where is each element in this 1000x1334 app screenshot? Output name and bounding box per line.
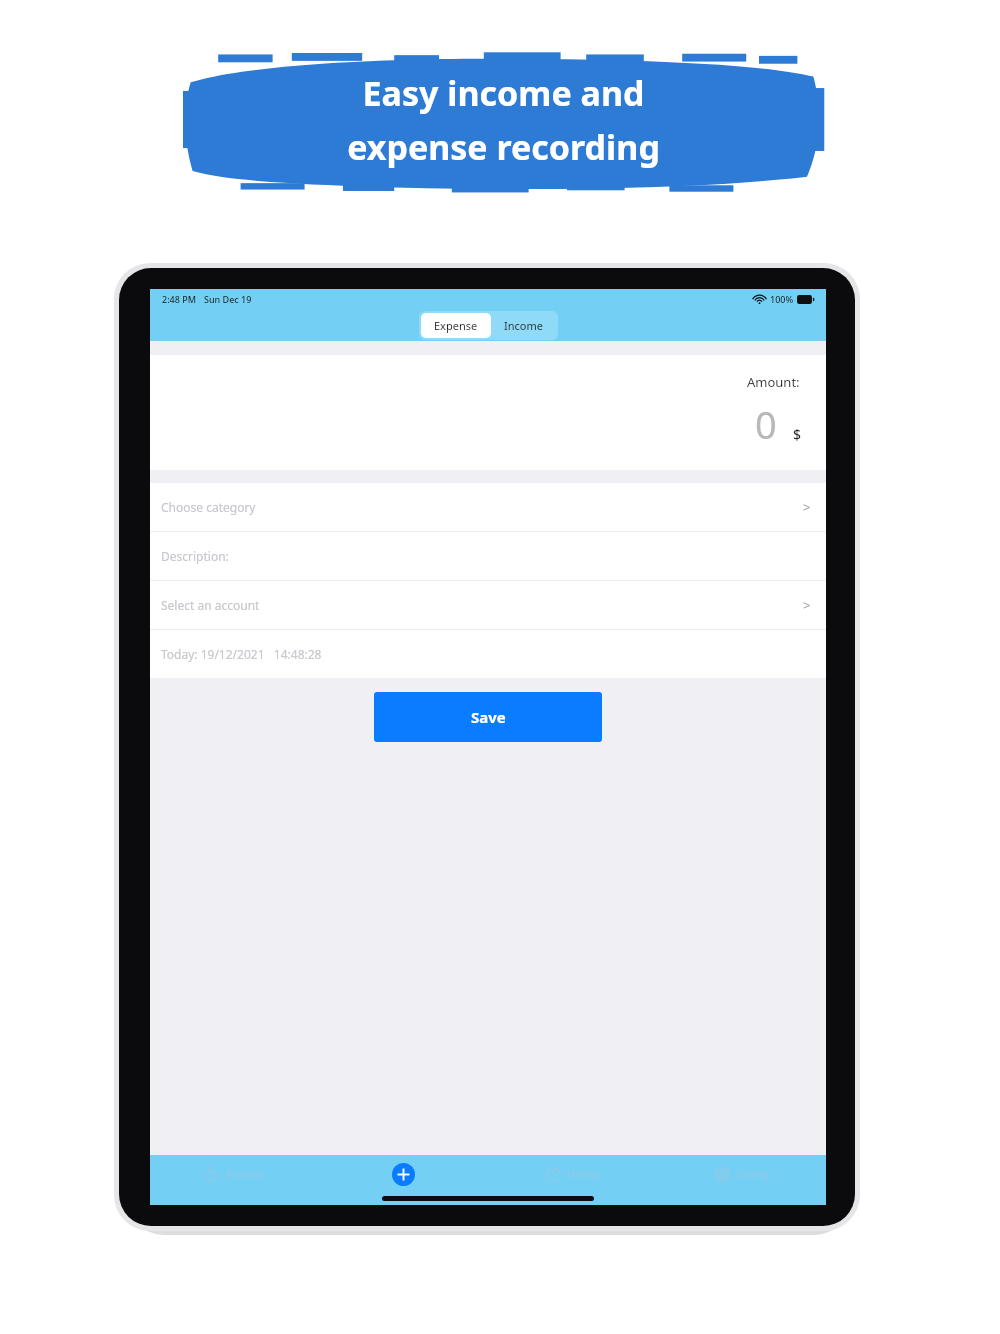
button[interactable]: Description:: [150, 532, 826, 580]
staticText: 0: [755, 398, 777, 450]
staticText: >: [803, 498, 811, 516]
button[interactable]: Add transaction: [319, 1155, 488, 1193]
staticText: >: [803, 596, 811, 614]
staticText: Today: 19/12/2021 14:48:28: [161, 646, 322, 662]
button[interactable]: Choose category: [150, 483, 826, 531]
staticText: Description:: [161, 548, 229, 564]
staticText: Setting: [736, 1167, 770, 1181]
button[interactable]: Setting: [657, 1155, 826, 1193]
staticText: Select an account: [161, 597, 260, 613]
button[interactable]: Save: [374, 692, 602, 742]
button[interactable]: History: [488, 1155, 657, 1193]
staticText: Choose category: [161, 499, 256, 515]
button[interactable]: Select an account: [150, 581, 826, 629]
staticText: 100%: [770, 293, 794, 305]
button[interactable]: Today: 19/12/2021 14:48:28: [150, 630, 826, 678]
staticText: Save: [471, 707, 506, 727]
button[interactable]: Income: [491, 313, 556, 338]
staticText: Amount:: [747, 373, 800, 391]
staticText: Expense: [434, 318, 478, 333]
staticText: Account: [226, 1167, 265, 1181]
staticText: Income: [504, 318, 543, 333]
button[interactable]: Account: [150, 1155, 319, 1193]
button[interactable]: Expense: [421, 313, 491, 338]
staticText: 2:48 PM: [162, 293, 196, 305]
staticText: History: [567, 1167, 601, 1181]
staticText: Easy income and: [362, 70, 645, 116]
staticText: $: [793, 425, 802, 444]
staticText: expense recording: [347, 124, 660, 170]
staticText: Sun Dec 19: [204, 293, 252, 305]
